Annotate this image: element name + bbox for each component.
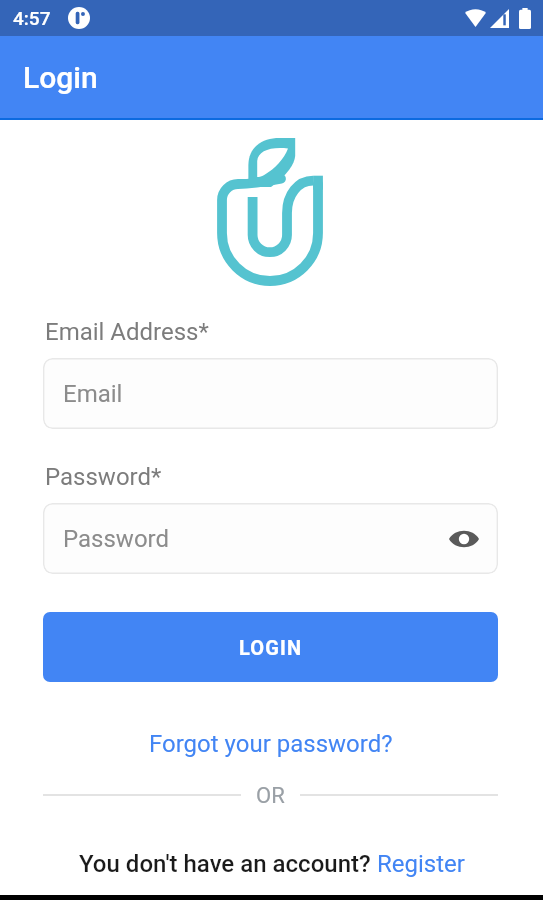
staticText: Email Address* [45, 318, 209, 346]
staticText: Email [63, 380, 123, 408]
button[interactable]: LOGIN [43, 612, 498, 682]
staticText: Forgot your password? [149, 730, 393, 758]
staticText: LOGIN [239, 636, 303, 659]
button[interactable]: Login [0, 36, 543, 120]
button[interactable]: Show password [444, 519, 484, 559]
button[interactable]: Register [377, 850, 465, 878]
button[interactable]: Forgot your password? [43, 730, 498, 758]
staticText: Password* [45, 463, 162, 491]
button[interactable]: Password [43, 503, 498, 574]
staticText: OR [256, 783, 285, 807]
staticText: Password [63, 525, 170, 553]
button[interactable]: Email [43, 358, 498, 429]
staticText: Register [377, 850, 465, 878]
staticText: Login [23, 60, 98, 95]
staticText: You don't have an account? [79, 850, 377, 878]
staticText: 4:57 [13, 7, 51, 29]
